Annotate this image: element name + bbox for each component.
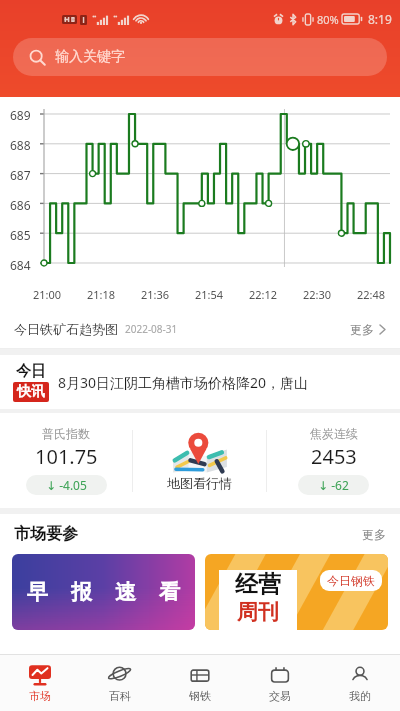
- staticText: ↓ -4.05: [46, 477, 87, 493]
- staticText: 我的: [349, 689, 371, 703]
- staticText: 22:30: [290, 287, 344, 302]
- staticText: 686: [10, 197, 31, 213]
- button[interactable]: 交易: [240, 655, 320, 711]
- staticText: 钢铁: [189, 689, 211, 703]
- button[interactable]: 我的: [320, 655, 400, 711]
- staticText: 2453: [311, 443, 357, 470]
- staticText: 今日: [16, 362, 46, 381]
- staticText: 今日铁矿石趋势图: [14, 321, 118, 337]
- staticText: 21:00: [20, 287, 74, 302]
- staticText: 21:36: [128, 287, 182, 302]
- other: Search: [29, 49, 46, 66]
- staticText: 21:18: [74, 287, 128, 302]
- staticText: 普氏指数: [42, 426, 90, 441]
- staticText: 22:48: [344, 287, 398, 302]
- staticText: 689: [10, 107, 31, 123]
- staticText: 速: [115, 579, 136, 605]
- staticText: 百科: [109, 689, 131, 703]
- staticText: 焦炭连续: [310, 426, 358, 441]
- staticText: 今日钢铁: [327, 573, 375, 588]
- staticText: 80%: [317, 12, 339, 27]
- staticText: 经营: [235, 570, 281, 599]
- staticText: 交易: [269, 689, 291, 703]
- staticText: 看: [159, 579, 180, 605]
- button[interactable]: 钢铁: [160, 655, 240, 711]
- staticText: 688: [10, 137, 31, 153]
- staticText: 市场: [29, 689, 51, 703]
- button[interactable]: 今日: [0, 355, 400, 409]
- staticText: 快讯: [17, 383, 45, 401]
- staticText: 2022-08-31: [125, 322, 178, 336]
- staticText: 报: [71, 579, 92, 605]
- staticText: 685: [10, 227, 31, 243]
- staticText: 22:12: [236, 287, 290, 302]
- button[interactable]: 市场要参: [0, 514, 400, 554]
- staticText: ↓ -62: [318, 477, 349, 493]
- staticText: 8月30日江阴工角槽市场价格降20，唐山: [58, 373, 309, 392]
- button[interactable]: 经营: [205, 554, 388, 630]
- staticText: 周刊: [237, 599, 279, 625]
- staticText: 更多: [362, 527, 386, 542]
- staticText: 687: [10, 167, 31, 183]
- button[interactable]: Search: [13, 38, 387, 76]
- staticText: 早: [27, 579, 48, 605]
- button[interactable]: 普氏指数: [0, 413, 132, 508]
- button[interactable]: 焦炭连续: [267, 413, 400, 508]
- staticText: 市场要参: [14, 524, 78, 544]
- staticText: 更多: [350, 322, 374, 337]
- staticText: 8:19: [368, 11, 392, 27]
- staticText: 21:54: [182, 287, 236, 302]
- staticText: 输入关键字: [55, 48, 125, 66]
- button[interactable]: 今日铁矿石趋势图: [0, 310, 400, 348]
- button[interactable]: 早: [12, 554, 195, 630]
- staticText: 684: [10, 257, 31, 273]
- button[interactable]: 市场: [0, 655, 80, 711]
- button[interactable]: 百科: [80, 655, 160, 711]
- button[interactable]: 地图看行情: [133, 413, 266, 508]
- staticText: 101.75: [35, 443, 98, 470]
- staticText: 地图看行情: [167, 475, 232, 491]
